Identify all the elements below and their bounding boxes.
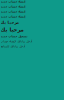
staticText: مرحبا بك xyxy=(0,27,23,33)
staticText: إنشاء حساب جديد xyxy=(0,5,25,8)
staticText: أدخل بياناتك لإنشاء حساب xyxy=(0,40,32,43)
staticText: مرحبا بك xyxy=(0,20,18,25)
staticText: إنشاء حساب جديد xyxy=(0,10,25,13)
staticText: إنشاء حساب جديد xyxy=(0,0,25,3)
staticText: إنشاء حساب جديد xyxy=(0,15,25,18)
staticText: أدخل بياناتك للمتابعة xyxy=(0,45,25,48)
staticText: تسجيل حساب جديد xyxy=(0,35,27,38)
